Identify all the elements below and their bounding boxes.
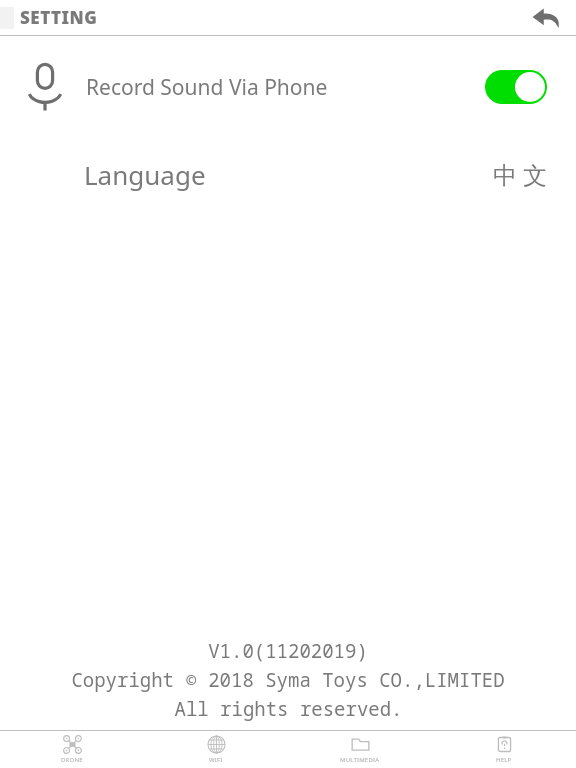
staticText: Copyright © 2018 Syma Toys CO.,LIMITED	[71, 667, 505, 693]
staticText: MULTIMEDIA	[340, 756, 380, 764]
button[interactable]: Language	[0, 138, 576, 210]
button[interactable]: Record Sound Via Phone	[0, 36, 576, 138]
staticText: DRONE	[61, 756, 83, 764]
button[interactable]: Back	[526, 0, 566, 35]
staticText: V1.0(11202019)	[208, 638, 368, 664]
button[interactable]: Record sound via phone toggle	[485, 70, 547, 104]
button[interactable]: MULTIMEDIA	[288, 731, 432, 768]
button[interactable]: HELP	[432, 731, 576, 768]
staticText: All rights reserved.	[174, 696, 403, 722]
staticText: Record Sound Via Phone	[86, 73, 328, 102]
button[interactable]: WIFI	[144, 731, 288, 768]
staticText: HELP	[496, 756, 512, 764]
staticText: Language	[84, 157, 206, 192]
staticText: 中 文	[493, 158, 548, 191]
button[interactable]: DRONE	[0, 731, 144, 768]
staticText: WIFI	[209, 756, 223, 764]
staticText: SETTING	[20, 6, 98, 29]
